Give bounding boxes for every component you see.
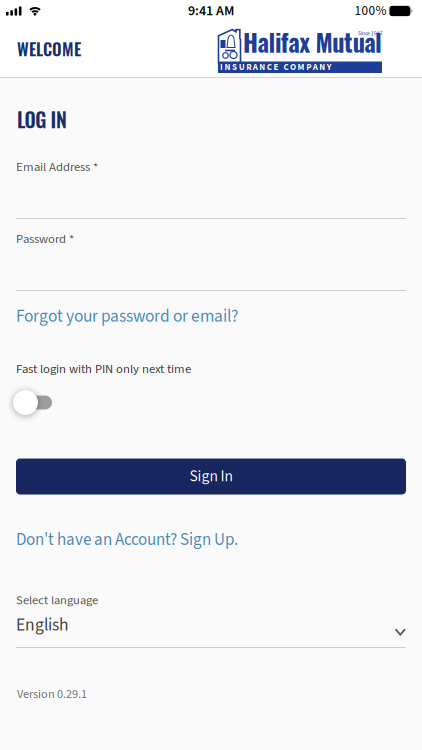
staticText: Forgot your password or email? (16, 304, 238, 329)
staticText: LOG IN (17, 105, 67, 134)
staticText: Password * (16, 230, 74, 248)
staticText: Select language (16, 591, 98, 609)
staticText: Version 0.29.1 (17, 685, 87, 703)
button[interactable]: Fast login with PIN only next time (13, 389, 53, 415)
staticText: Fast login with PIN only next time (16, 360, 191, 378)
staticText: Don't have an Account? Sign Up. (16, 527, 238, 552)
staticText: Email Address * (16, 158, 98, 176)
staticText: 100% (354, 2, 386, 20)
staticText: English (16, 612, 69, 637)
staticText: INSURANCE COMPANY (220, 61, 332, 74)
staticText: Sign In (189, 465, 232, 488)
button[interactable]: Forgot your password or email? (16, 304, 238, 329)
staticText: Halifax Mutual (243, 23, 382, 60)
staticText: WELCOME (17, 36, 81, 61)
button[interactable]: Sign In (16, 458, 406, 494)
button[interactable]: Don't have an Account? Sign Up. (16, 527, 238, 552)
button[interactable]: English (0, 612, 422, 637)
staticText: Since 1947 (358, 29, 383, 37)
staticText: 9:41 AM (188, 1, 234, 21)
